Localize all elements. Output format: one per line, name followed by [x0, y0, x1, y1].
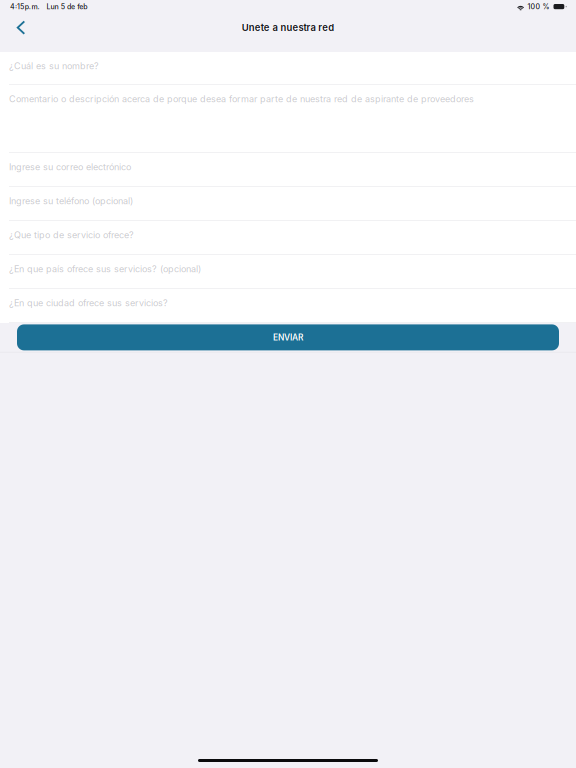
- staticText: Ingrese su correo electrónico: [9, 161, 131, 172]
- staticText: ENVIAR: [273, 332, 303, 342]
- staticText: red: [318, 22, 334, 33]
- staticText: ¿Que tipo de servicio ofrece?: [9, 229, 134, 240]
- button[interactable]: Comentario o descripción acerca de porqu…: [0, 85, 576, 153]
- button[interactable]: ¿En que país ofrece sus servicios? (opci…: [0, 255, 576, 289]
- staticText: 100 %: [527, 2, 549, 11]
- staticText: 4:15: [10, 2, 24, 11]
- button[interactable]: Back: [6, 14, 36, 42]
- staticText: p.: [25, 2, 31, 11]
- staticText: Ingrese su teléfono (opcional): [9, 195, 133, 206]
- staticText: ¿Cuál es su nombre?: [9, 60, 99, 71]
- staticText: Comentario o descripción acerca de porqu…: [9, 93, 474, 104]
- button[interactable]: ENVIAR: [17, 324, 559, 350]
- staticText: nuestra: [280, 22, 315, 33]
- staticText: ¿En que ciudad ofrece sus servicios?: [9, 297, 168, 308]
- button[interactable]: ¿En que ciudad ofrece sus servicios?: [0, 289, 576, 323]
- staticText: ¿En que país ofrece sus servicios? (opci…: [9, 263, 201, 274]
- staticText: Lun: [47, 2, 59, 11]
- staticText: de: [67, 2, 75, 11]
- button[interactable]: Ingrese su correo electrónico: [0, 153, 576, 187]
- staticText: 5: [61, 2, 65, 11]
- button[interactable]: Ingrese su teléfono (opcional): [0, 187, 576, 221]
- staticText: feb: [77, 2, 87, 11]
- staticText: a: [273, 22, 278, 33]
- staticText: Unete: [242, 22, 270, 33]
- button[interactable]: ¿Que tipo de servicio ofrece?: [0, 221, 576, 255]
- button[interactable]: ¿Cuál es su nombre?: [0, 52, 576, 85]
- staticText: m.: [32, 2, 40, 11]
